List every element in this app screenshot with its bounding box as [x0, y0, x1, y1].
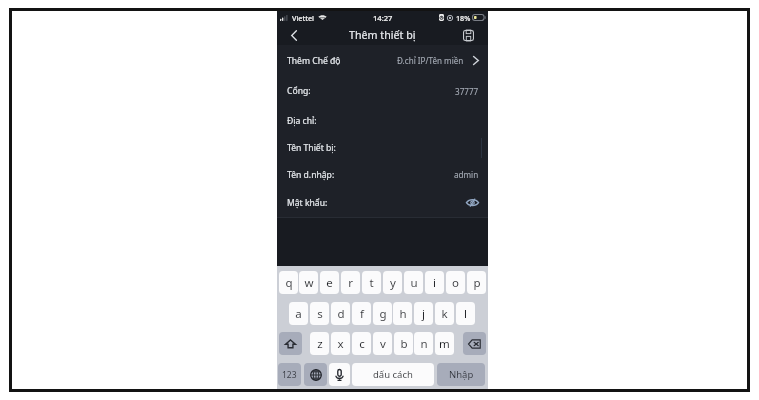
button[interactable]: v — [373, 332, 392, 355]
button[interactable]: c — [352, 332, 371, 355]
staticText: c — [359, 336, 365, 352]
staticText: k — [441, 306, 448, 322]
button[interactable]: p — [467, 271, 486, 294]
staticText: Tên d.nhập: — [287, 169, 335, 181]
button[interactable]: g — [373, 302, 392, 325]
staticText: Nhập — [449, 368, 474, 381]
button[interactable]: a — [289, 302, 308, 325]
staticText: b — [400, 336, 408, 352]
staticText: Tên Thiết bị: — [287, 142, 336, 154]
staticText: 123 — [282, 369, 297, 381]
button[interactable]: l — [456, 302, 475, 325]
staticText: n — [420, 336, 428, 352]
staticText: Cổng: — [287, 85, 311, 97]
staticText: e — [326, 275, 333, 291]
staticText: q — [285, 275, 293, 291]
button[interactable]: Tên d.nhập: — [277, 161, 488, 188]
button[interactable]: Save — [458, 25, 478, 45]
button[interactable]: Tên Thiết bị: — [277, 135, 488, 161]
button[interactable]: z — [310, 332, 329, 355]
button[interactable]: k — [435, 302, 454, 325]
staticText: v — [380, 336, 386, 352]
button[interactable]: dấu cách — [352, 363, 434, 386]
button[interactable]: Back — [283, 24, 305, 46]
button[interactable]: Change keyboard — [304, 363, 327, 386]
staticText: o — [452, 275, 459, 291]
staticText: Mật khẩu: — [287, 197, 328, 209]
staticText: z — [317, 336, 323, 352]
button[interactable]: j — [414, 302, 433, 325]
staticText: a — [295, 306, 302, 322]
staticText: 14:27 — [373, 13, 393, 23]
staticText: Đ.chỉ IP/Tên miền — [397, 55, 464, 66]
staticText: 37777 — [455, 86, 479, 97]
button[interactable]: d — [331, 302, 350, 325]
button[interactable]: n — [414, 332, 433, 355]
button[interactable]: x — [331, 332, 350, 355]
button[interactable]: m — [435, 332, 454, 355]
staticText: g — [379, 306, 387, 322]
button[interactable]: y — [383, 271, 402, 294]
staticText: x — [337, 336, 344, 352]
staticText: admin — [454, 169, 479, 180]
staticText: Thêm Chế độ — [287, 55, 341, 67]
button[interactable]: Backspace — [463, 332, 486, 355]
button[interactable]: o — [446, 271, 465, 294]
button[interactable]: Địa chỉ: — [277, 106, 488, 135]
staticText: dấu cách — [373, 368, 413, 381]
button[interactable]: s — [310, 302, 329, 325]
staticText: Địa chỉ: — [287, 115, 317, 127]
button[interactable]: e — [320, 271, 339, 294]
button[interactable]: r — [341, 271, 360, 294]
button[interactable]: t — [362, 271, 381, 294]
staticText: s — [317, 306, 323, 322]
button[interactable]: Shift — [279, 332, 302, 355]
staticText: w — [304, 275, 314, 291]
staticText: u — [410, 275, 418, 291]
button[interactable]: 123 — [278, 363, 301, 386]
button[interactable]: Mật khẩu: — [277, 188, 488, 217]
staticText: m — [439, 336, 450, 352]
button[interactable]: Cổng: — [277, 76, 488, 106]
staticText: d — [337, 306, 345, 322]
button[interactable]: Nhập — [437, 363, 485, 386]
staticText: h — [399, 306, 407, 322]
staticText: i — [433, 275, 436, 291]
staticText: p — [473, 275, 481, 291]
button[interactable]: h — [393, 302, 412, 325]
button[interactable]: w — [299, 271, 318, 294]
staticText: 18% — [456, 13, 471, 23]
staticText: r — [348, 275, 353, 291]
button[interactable]: b — [394, 332, 413, 355]
staticText: y — [390, 275, 396, 291]
button[interactable]: u — [404, 271, 423, 294]
staticText: Thêm thiết bị — [349, 28, 416, 43]
button[interactable]: q — [279, 271, 298, 294]
button[interactable]: Thêm Chế độ — [277, 45, 488, 76]
staticText: f — [360, 306, 364, 322]
button[interactable]: f — [352, 302, 371, 325]
staticText: t — [369, 275, 374, 291]
staticText: j — [422, 306, 425, 322]
staticText: Viettel — [292, 13, 315, 23]
button[interactable]: Voice input — [329, 363, 350, 386]
button[interactable]: i — [425, 271, 444, 294]
staticText: l — [464, 306, 467, 322]
